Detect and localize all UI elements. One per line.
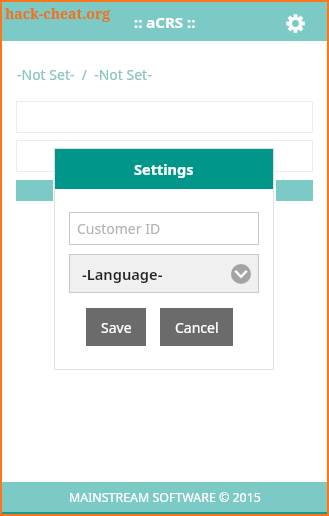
staticText: Customer ID: [77, 219, 161, 238]
staticText: Save: [101, 318, 132, 337]
button[interactable]: Cancel: [160, 308, 233, 346]
button[interactable]: -Language-: [69, 254, 259, 293]
staticText: -Language-: [82, 264, 163, 284]
staticText: Settings: [134, 159, 194, 179]
staticText: -Not Set- / -Not Set-: [17, 65, 152, 84]
staticText: hack-cheat.org: [5, 4, 111, 23]
button[interactable]: Save: [86, 308, 146, 346]
button[interactable]: Settings: [281, 9, 309, 37]
staticText: :: aCRS ::: [134, 12, 196, 32]
staticText: MAINSTREAM SOFTWARE © 2015: [69, 489, 261, 506]
staticText: Cancel: [175, 318, 219, 337]
